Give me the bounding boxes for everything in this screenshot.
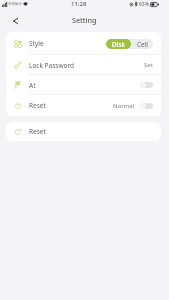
button[interactable]: Reset — [6, 122, 161, 141]
button[interactable]: At — [6, 75, 161, 95]
staticText: Normal — [113, 102, 135, 110]
button[interactable]: Back — [8, 13, 23, 28]
button[interactable]: Toggle — [140, 82, 153, 88]
staticText: 中国电信 — [8, 2, 22, 6]
staticText: Setting — [72, 15, 97, 25]
staticText: Cell — [137, 40, 148, 49]
staticText: Reset — [29, 101, 46, 110]
button[interactable]: Lock Password — [6, 55, 161, 75]
staticText: Reset — [29, 127, 46, 136]
staticText: Disk — [112, 40, 126, 49]
staticText: Style — [29, 39, 44, 48]
staticText: 63% — [139, 1, 149, 8]
staticText: 11:28 — [71, 0, 87, 8]
button[interactable]: Cell — [131, 39, 153, 49]
staticText: Lock Password — [29, 61, 75, 70]
staticText: Set — [144, 61, 153, 69]
button[interactable]: Disk — [106, 39, 131, 49]
button[interactable]: Toggle — [140, 103, 153, 109]
button[interactable]: Style — [6, 32, 161, 55]
button[interactable]: Reset — [6, 95, 161, 116]
staticText: At — [29, 81, 36, 90]
